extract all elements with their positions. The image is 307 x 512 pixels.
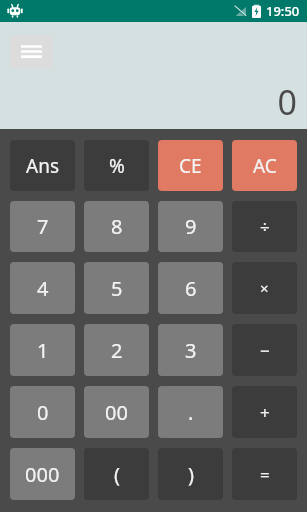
staticText: 19:50 [266, 2, 300, 20]
staticText: = [260, 463, 270, 486]
button[interactable]: 7 [10, 201, 75, 252]
button[interactable]: 0 [10, 386, 75, 438]
button[interactable]: CE [158, 140, 223, 191]
staticText: . [188, 399, 194, 426]
button[interactable]: ) [158, 448, 223, 500]
button[interactable]: 9 [158, 201, 223, 252]
staticText: AC [253, 153, 277, 179]
button[interactable]: Menu [10, 35, 53, 68]
staticText: ) [188, 461, 194, 488]
staticText: 7 [37, 213, 49, 240]
button[interactable]: . [158, 386, 223, 438]
staticText: 00 [105, 399, 128, 426]
staticText: 1 [37, 337, 49, 364]
button[interactable]: − [232, 324, 297, 376]
staticText: ( [114, 461, 120, 488]
staticText: 6 [185, 275, 197, 302]
button[interactable]: 6 [158, 262, 223, 314]
staticText: 0 [277, 79, 297, 125]
staticText: 0 [37, 399, 49, 426]
staticText: Ans [26, 153, 59, 179]
button[interactable]: 00 [84, 386, 149, 438]
staticText: + [260, 401, 270, 424]
staticText: ÷ [260, 215, 270, 238]
button[interactable]: ÷ [232, 201, 297, 252]
staticText: % [109, 153, 125, 179]
button[interactable]: 3 [158, 324, 223, 376]
button[interactable]: + [232, 386, 297, 438]
button[interactable]: % [84, 140, 149, 191]
button[interactable]: 1 [10, 324, 75, 376]
staticText: × [260, 278, 269, 298]
staticText: 000 [25, 461, 60, 488]
button[interactable]: 8 [84, 201, 149, 252]
button[interactable]: ( [84, 448, 149, 500]
button[interactable]: 5 [84, 262, 149, 314]
staticText: 8 [111, 213, 123, 240]
button[interactable]: = [232, 448, 297, 500]
button[interactable]: AC [232, 140, 297, 191]
button[interactable]: 000 [10, 448, 75, 500]
staticText: 2 [111, 337, 123, 364]
button[interactable]: 4 [10, 262, 75, 314]
staticText: − [260, 339, 270, 362]
staticText: 5 [111, 275, 123, 302]
button[interactable]: Ans [10, 140, 75, 191]
staticText: 4 [37, 275, 49, 302]
button[interactable]: 2 [84, 324, 149, 376]
staticText: 9 [185, 213, 197, 240]
button[interactable]: × [232, 262, 297, 314]
staticText: 3 [185, 337, 197, 364]
staticText: CE [179, 153, 202, 179]
